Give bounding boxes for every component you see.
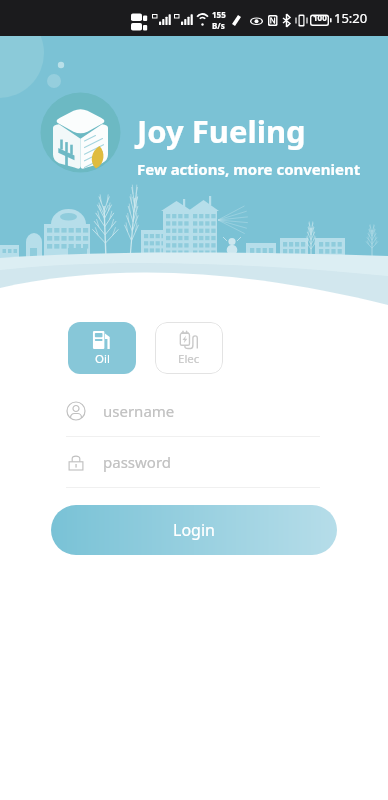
- staticText: password: [103, 452, 171, 472]
- staticText: Login: [173, 519, 215, 541]
- staticText: 155: [212, 9, 226, 20]
- staticText: 100: [313, 12, 327, 23]
- staticText: Elec: [178, 351, 200, 367]
- button[interactable]: Elec: [155, 322, 223, 374]
- staticText: Oil: [95, 351, 110, 367]
- staticText: Joy Fueling: [137, 110, 306, 152]
- button[interactable]: password: [66, 437, 320, 487]
- staticText: B/s: [212, 20, 225, 31]
- staticText: 15:20: [334, 9, 368, 27]
- button[interactable]: Oil: [68, 322, 136, 374]
- button[interactable]: username: [66, 386, 320, 436]
- button[interactable]: Login: [51, 505, 337, 555]
- staticText: Few actions, more convenient: [137, 159, 361, 179]
- staticText: username: [103, 401, 175, 421]
